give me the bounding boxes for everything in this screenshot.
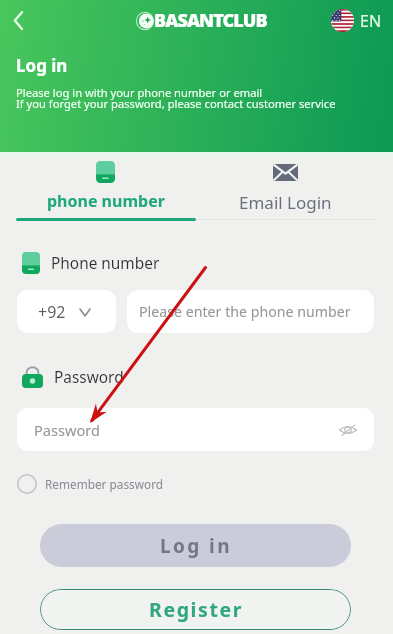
staticText: BASANTCLUB (154, 8, 267, 33)
staticText: Log in (16, 54, 68, 77)
button[interactable]: Password (17, 408, 374, 451)
button[interactable]: Email Login (195, 152, 375, 214)
button[interactable]: Back (0, 0, 44, 44)
button[interactable]: EN (331, 9, 382, 32)
staticText: Please log in with your phone number or … (16, 85, 336, 111)
staticText: Register (149, 596, 243, 623)
staticText: Email Login (239, 191, 332, 214)
button[interactable]: Register (40, 589, 351, 630)
staticText: Log in (160, 533, 232, 559)
button[interactable]: Show password (336, 418, 360, 442)
button[interactable]: phone number (16, 152, 195, 212)
staticText: Remember password (45, 476, 164, 492)
staticText: Password (54, 367, 124, 388)
staticText: Phone number (51, 253, 160, 274)
staticText: Password (34, 420, 101, 440)
staticText: Please enter the phone number (139, 302, 351, 321)
button[interactable]: Remember password (17, 474, 164, 494)
button[interactable]: Please enter the phone number (127, 290, 374, 333)
staticText: +92 (38, 301, 66, 323)
button[interactable]: +92 (17, 290, 116, 333)
staticText: phone number (47, 190, 165, 212)
button[interactable]: Log in (40, 524, 351, 567)
staticText: EN (360, 10, 382, 32)
